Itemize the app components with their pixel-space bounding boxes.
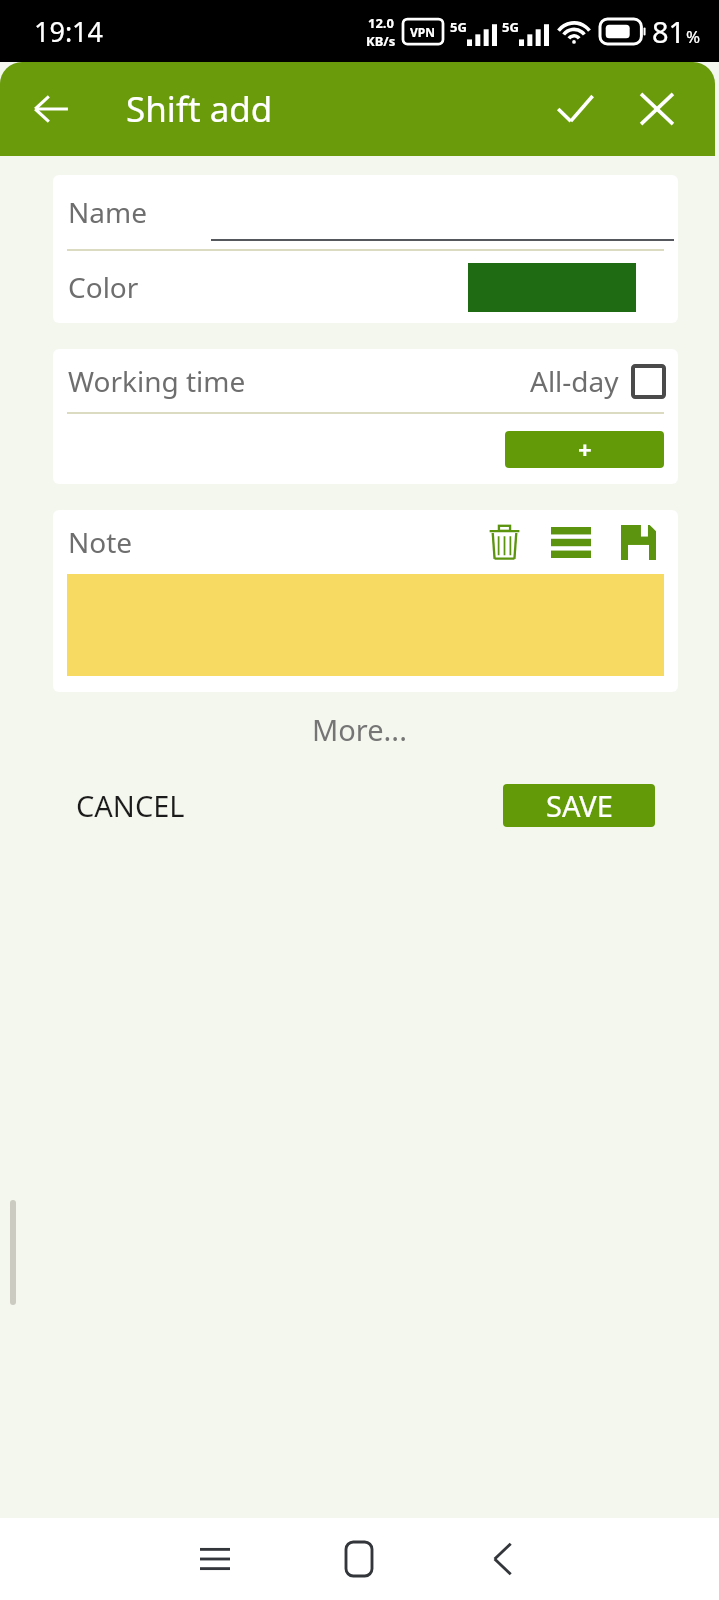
staticText: Note [68,523,133,561]
button[interactable]: SAVE [503,784,655,827]
button[interactable]: Back [431,1518,575,1600]
button[interactable]: Save note [611,515,665,569]
staticText: 5G [502,18,519,36]
staticText: Name [68,193,147,231]
staticText: CANCEL [76,786,185,825]
staticText: All-day [530,362,619,400]
staticText: Working time [68,362,246,400]
button[interactable]: All-day [530,362,664,400]
button[interactable]: Color [53,251,678,323]
button[interactable]: Name [53,175,678,249]
button[interactable]: Add working time [505,431,664,468]
button[interactable]: Recent apps [143,1518,287,1600]
staticText: Shift add [126,85,273,133]
button[interactable]: Home [287,1518,431,1600]
staticText: Color [68,268,139,306]
button[interactable]: Note list [544,515,598,569]
staticText: VPN [410,24,436,40]
button[interactable]: Confirm [539,73,611,145]
button[interactable]: Back [16,74,86,144]
staticText: 5G [450,18,467,36]
button[interactable]: Delete note [477,515,531,569]
staticText: SAVE [546,786,613,825]
staticText: KB/s [366,32,396,50]
button[interactable]: CANCEL [60,778,201,833]
staticText: 81 [652,12,686,51]
staticText: 19:14 [34,13,104,50]
button[interactable]: More... [312,710,407,749]
staticText: + [578,433,592,466]
button[interactable]: Close [621,73,693,145]
staticText: 12.0 [368,14,394,32]
staticText: % [686,25,701,48]
